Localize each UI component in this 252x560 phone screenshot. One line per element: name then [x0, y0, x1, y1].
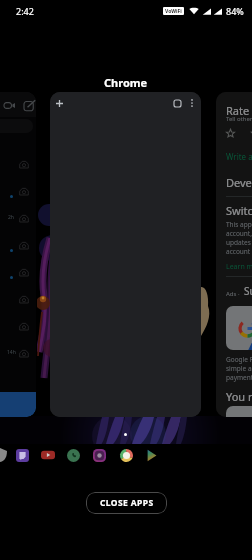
button[interactable]: CLOSE APPS — [86, 492, 167, 514]
button[interactable] — [226, 406, 252, 417]
staticText: VoWiFi — [165, 8, 182, 15]
staticText: 14h — [7, 349, 16, 356]
button[interactable]: More options — [184, 95, 200, 111]
button[interactable]: New chat — [21, 97, 36, 113]
button[interactable]: Play Store — [142, 446, 160, 464]
button[interactable] — [0, 313, 36, 340]
staticText: Suggested for you — [244, 284, 252, 298]
button[interactable]: Twitch — [13, 446, 31, 464]
button[interactable] — [0, 178, 36, 205]
button[interactable]: New tab — [51, 95, 68, 112]
staticText: 2:42 — [16, 5, 34, 17]
staticText: You might also like — [226, 389, 252, 404]
button[interactable] — [0, 232, 36, 259]
staticText: Developer contact — [226, 175, 252, 190]
button[interactable]: Learn more — [226, 262, 252, 272]
button[interactable]: Video call — [0, 92, 36, 417]
button[interactable]: Tabs — [169, 95, 186, 112]
button[interactable]: Video call — [1, 97, 17, 113]
button[interactable]: Chrome — [117, 446, 135, 464]
button[interactable] — [0, 151, 36, 178]
button[interactable]: Instagram — [90, 446, 108, 464]
button[interactable]: Verify — [0, 392, 36, 417]
staticText: CLOSE APPS — [100, 497, 154, 509]
staticText: Ads · — [226, 290, 240, 298]
button[interactable]: WhatsApp — [64, 446, 82, 464]
staticText: Rate this app — [226, 103, 252, 118]
staticText: Tell others what you think — [226, 115, 252, 123]
button[interactable]: New tab — [50, 92, 201, 417]
button[interactable]: Rate this app — [216, 92, 252, 417]
button[interactable]: 2h — [0, 205, 36, 232]
staticText: 84% — [226, 5, 244, 17]
staticText: 2h — [8, 214, 14, 221]
button[interactable]: Write a review — [226, 151, 252, 162]
button[interactable]: App — [0, 448, 7, 462]
button[interactable]: 14h — [0, 340, 36, 367]
staticText: This app is available for this account, … — [226, 220, 252, 256]
button[interactable] — [0, 286, 36, 313]
button[interactable]: Pay — [226, 306, 252, 350]
staticText: Google Pay (Tez) - a simple and secure p… — [226, 355, 252, 382]
staticText: Chrome — [104, 75, 148, 90]
staticText: Switch account — [226, 203, 252, 218]
button[interactable] — [0, 259, 36, 286]
button[interactable]: YouTube — [39, 446, 57, 464]
